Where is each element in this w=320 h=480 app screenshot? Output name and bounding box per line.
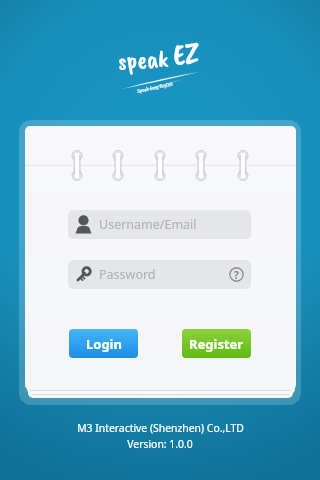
button[interactable]: Login xyxy=(69,329,138,358)
staticText: Username/Email xyxy=(99,216,197,233)
staticText: speak xyxy=(117,42,170,78)
staticText: Version: 1.0.0 xyxy=(127,437,193,451)
staticText: Register xyxy=(189,335,244,353)
staticText: EZ xyxy=(171,34,201,73)
button[interactable]: Help xyxy=(229,267,244,282)
button[interactable]: Register xyxy=(182,329,251,358)
staticText: Password xyxy=(99,266,156,283)
staticText: ? xyxy=(234,268,239,282)
staticText: M3 Interactive (Shenzhen) Co.,LTD xyxy=(77,421,244,435)
button[interactable]: Username or email xyxy=(68,210,251,239)
staticText: Speak Easy English xyxy=(137,80,174,95)
button[interactable]: Password xyxy=(68,260,251,289)
staticText: Login xyxy=(86,335,122,353)
